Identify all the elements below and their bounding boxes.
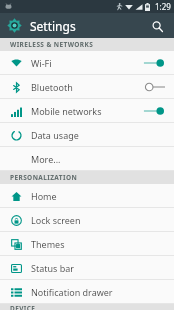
staticText: Lock screen <box>31 214 81 226</box>
button[interactable]: Notification drawer <box>0 280 174 303</box>
staticText: Mobile networks <box>31 105 102 117</box>
staticText: 1:29 <box>155 1 171 12</box>
button[interactable]: Wi-Fi <box>0 51 174 74</box>
staticText: Home <box>31 190 57 202</box>
button[interactable]: Bluetooth <box>0 75 174 98</box>
staticText: Status bar <box>31 262 75 274</box>
button[interactable]: Lock screen <box>0 208 174 231</box>
staticText: Bluetooth <box>31 81 73 93</box>
staticText: More... <box>31 153 61 165</box>
button[interactable]: Data usage <box>0 123 174 146</box>
button[interactable]: Themes <box>0 232 174 255</box>
staticText: Notification drawer <box>31 286 113 298</box>
staticText: WIRELESS & NETWORKS <box>10 40 94 49</box>
button[interactable]: Home <box>0 184 174 207</box>
staticText: Themes <box>31 238 65 250</box>
staticText: Wi-Fi <box>31 57 52 69</box>
button[interactable]: Switch on <box>142 56 166 70</box>
staticText: Data usage <box>31 129 79 141</box>
button[interactable]: Search <box>147 16 167 36</box>
button[interactable]: Switch off <box>142 80 166 94</box>
button[interactable]: Switch on <box>142 104 166 118</box>
staticText: Settings <box>30 18 76 34</box>
staticText: PERSONALIZATION <box>10 173 78 182</box>
button[interactable]: Status bar <box>0 256 174 279</box>
button[interactable]: Mobile networks <box>0 99 174 122</box>
staticText: DEVICE <box>10 304 36 310</box>
button[interactable]: More... <box>0 147 174 170</box>
